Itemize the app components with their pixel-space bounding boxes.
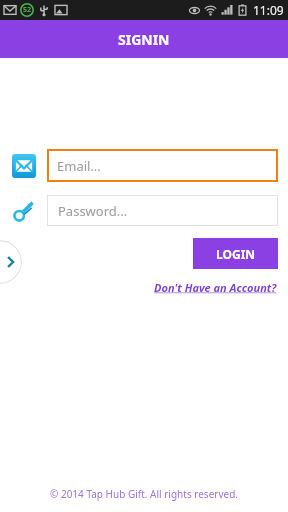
button[interactable]: LOGIN bbox=[193, 238, 278, 269]
staticText: 11:09 bbox=[253, 2, 284, 18]
staticText: 52 bbox=[23, 5, 32, 15]
button[interactable]: Email... bbox=[47, 149, 278, 182]
button[interactable]: Don't Have an Account? bbox=[152, 278, 279, 297]
staticText: Don't Have an Account? bbox=[154, 280, 277, 295]
staticText: © 2014 Tap Hub Gift. All rights reserved… bbox=[50, 487, 238, 501]
staticText: Email... bbox=[57, 157, 101, 175]
staticText: LOGIN bbox=[216, 246, 256, 262]
button[interactable]: Password... bbox=[47, 195, 278, 226]
staticText: SIGNIN bbox=[118, 30, 170, 49]
button[interactable]: Open navigation drawer bbox=[0, 240, 22, 284]
staticText: Password... bbox=[58, 202, 128, 220]
